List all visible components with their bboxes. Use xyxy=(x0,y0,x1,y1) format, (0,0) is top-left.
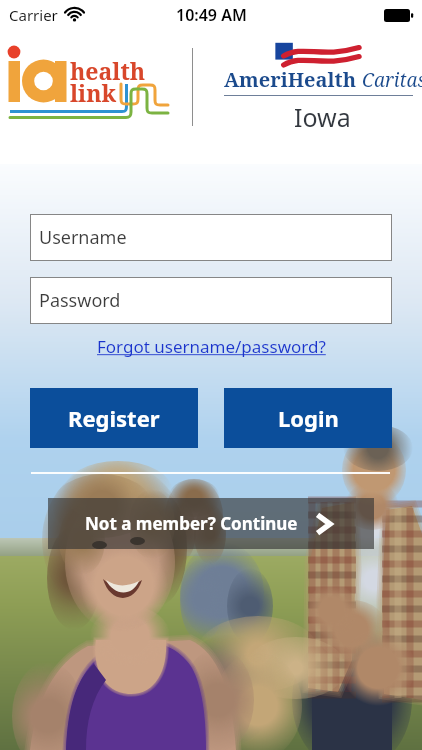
staticText: Username xyxy=(39,225,127,250)
button[interactable]: Forgot username/password? xyxy=(97,335,326,358)
staticText: 10:49 AM xyxy=(176,4,247,26)
button[interactable]: Login xyxy=(224,388,392,448)
button[interactable]: Password xyxy=(30,277,392,324)
staticText: health xyxy=(70,55,146,86)
staticText: Caritas xyxy=(362,67,422,93)
staticText: Carrier xyxy=(9,5,58,25)
staticText: Not a member? Continue xyxy=(85,512,298,535)
button[interactable]: Register xyxy=(30,388,198,448)
button[interactable]: Not a member? Continue xyxy=(48,498,374,549)
button[interactable]: Username xyxy=(30,214,392,261)
staticText: Password xyxy=(39,288,121,313)
staticText: link xyxy=(70,77,117,108)
staticText: AmeriHealth xyxy=(224,66,357,93)
staticText: Register xyxy=(68,403,160,433)
staticText: Iowa xyxy=(294,100,351,134)
staticText: Login xyxy=(278,403,339,433)
